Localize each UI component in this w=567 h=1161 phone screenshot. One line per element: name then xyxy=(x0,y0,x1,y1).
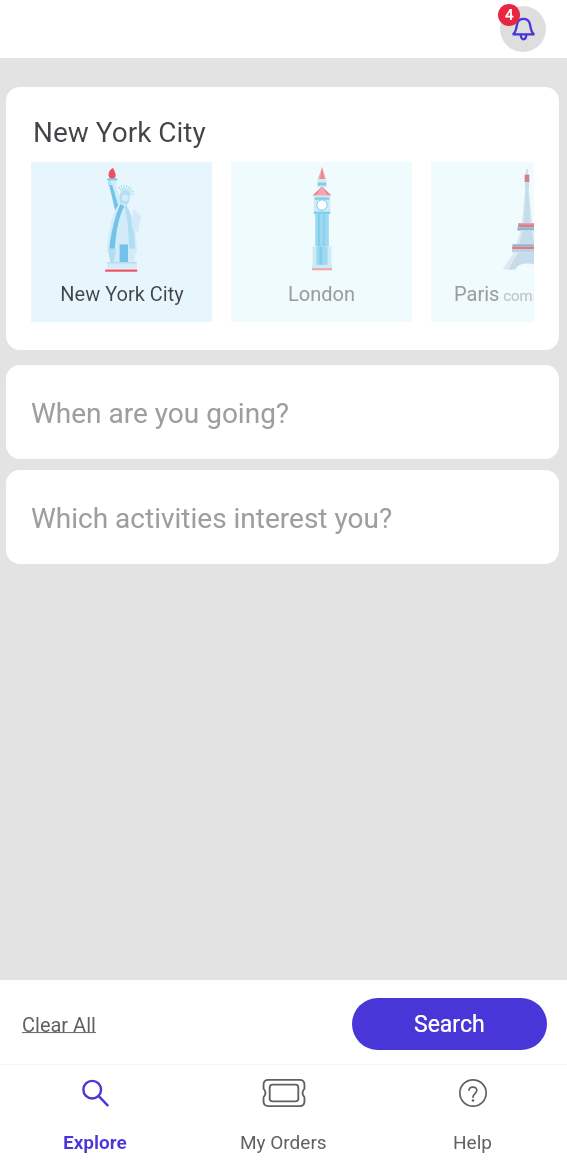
button[interactable]: Search xyxy=(352,998,547,1050)
staticText: Which activities interest you? xyxy=(31,502,393,535)
button[interactable]: Which activities interest you? xyxy=(6,470,559,564)
button[interactable]: London xyxy=(231,162,412,322)
button[interactable]: New York City xyxy=(31,162,212,322)
staticText: New York City xyxy=(33,116,206,149)
staticText: Explore xyxy=(63,1131,127,1153)
staticText: When are you going? xyxy=(31,397,290,430)
button[interactable]: Notifications xyxy=(497,3,549,55)
button[interactable]: Explore xyxy=(0,1065,189,1161)
button[interactable]: Help xyxy=(378,1065,567,1161)
button[interactable]: When are you going? xyxy=(6,365,559,459)
staticText: 4 xyxy=(505,6,514,24)
button[interactable]: Paris coming soon xyxy=(431,162,534,322)
button[interactable]: My Orders xyxy=(189,1065,378,1161)
staticText: Help xyxy=(453,1131,492,1153)
staticText: Search xyxy=(414,1011,485,1038)
staticText: New York City xyxy=(60,282,184,305)
staticText: Clear All xyxy=(22,1013,96,1036)
staticText: London xyxy=(288,282,355,305)
staticText: Paris coming soon xyxy=(454,282,534,305)
staticText: My Orders xyxy=(240,1131,327,1153)
button[interactable]: Clear All xyxy=(22,1013,96,1036)
